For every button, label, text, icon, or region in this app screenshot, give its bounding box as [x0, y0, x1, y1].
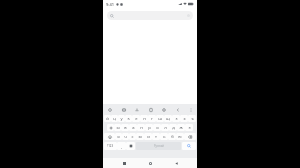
button[interactable]: я — [115, 133, 122, 140]
staticText: ю — [178, 134, 182, 140]
staticText: ?123 — [107, 144, 114, 148]
button[interactable]: с — [129, 133, 136, 140]
button[interactable]: м — [136, 133, 144, 140]
staticText: л — [164, 125, 167, 131]
button[interactable]: г — [148, 115, 156, 122]
button[interactable]: х — [180, 115, 188, 122]
button[interactable]: ?123 — [104, 142, 117, 150]
button[interactable]: ч — [122, 133, 129, 140]
button[interactable]: т — [152, 133, 160, 140]
staticText: ц — [113, 116, 116, 122]
button[interactable]: к — [125, 115, 132, 122]
staticText: , — [121, 144, 123, 149]
button[interactable]: а — [129, 124, 137, 131]
staticText: а — [132, 125, 135, 131]
staticText: в — [124, 125, 127, 131]
staticText: ф — [109, 125, 113, 131]
button[interactable]: ю — [176, 133, 184, 140]
button[interactable]: в — [121, 124, 129, 131]
button[interactable]: р — [145, 124, 153, 131]
button[interactable]: Back — [171, 158, 181, 168]
button[interactable]: и — [144, 133, 152, 140]
staticText: я — [117, 134, 120, 140]
button[interactable]: Change language — [126, 142, 135, 150]
staticText: о — [156, 125, 159, 131]
button[interactable]: Keyboard tool 2 — [133, 106, 140, 113]
staticText: э — [188, 125, 191, 131]
button[interactable]: Keyboard tool 5 — [174, 106, 181, 113]
button[interactable]: д — [169, 124, 177, 131]
staticText: н — [143, 116, 146, 122]
button[interactable]: з — [172, 115, 180, 122]
staticText: т — [155, 134, 157, 140]
button[interactable]: п — [137, 124, 145, 131]
button[interactable]: ь — [160, 133, 168, 140]
button[interactable]: Keyboard tool 0 — [106, 106, 113, 113]
staticText: м — [138, 134, 142, 140]
button[interactable]: у — [118, 115, 125, 122]
button[interactable]: Shift — [104, 133, 115, 140]
staticText: ч — [124, 134, 127, 140]
staticText: ы — [116, 125, 120, 131]
button[interactable]: Keyboard tool 6 — [187, 106, 194, 113]
staticText: р — [148, 125, 151, 131]
staticText: к — [127, 116, 130, 122]
button[interactable]: Keyboard tool 4 — [160, 106, 167, 113]
button[interactable]: ы — [114, 124, 121, 131]
button[interactable]: Keyboard tool 1 — [120, 106, 127, 113]
staticText: п — [140, 125, 143, 131]
staticText: е — [135, 116, 138, 122]
staticText: г — [151, 116, 153, 122]
button[interactable]: Space — [136, 142, 181, 150]
staticText: б — [171, 134, 174, 140]
button[interactable] — [107, 11, 193, 20]
staticText: й — [106, 116, 109, 122]
staticText: ж — [179, 125, 183, 131]
staticText: х — [183, 116, 186, 122]
button[interactable]: о — [153, 124, 161, 131]
button[interactable]: ф — [107, 124, 114, 131]
button[interactable]: Settings — [117, 142, 126, 150]
staticText: ь — [163, 134, 166, 140]
button[interactable]: н — [140, 115, 148, 122]
button[interactable]: б — [168, 133, 176, 140]
button[interactable]: ж — [177, 124, 185, 131]
staticText: з — [175, 116, 178, 122]
button[interactable]: Home — [145, 158, 155, 168]
button[interactable]: е — [132, 115, 140, 122]
button[interactable]: ъ — [188, 115, 196, 122]
button[interactable]: ц — [111, 115, 118, 122]
staticText: ъ — [191, 116, 194, 122]
staticText: с — [131, 134, 134, 140]
button[interactable]: Backspace — [184, 133, 196, 140]
button[interactable]: ш — [156, 115, 164, 122]
button[interactable]: й — [104, 115, 111, 122]
staticText: д — [172, 125, 175, 131]
staticText: у — [120, 116, 123, 122]
button[interactable]: Search — [182, 142, 196, 150]
staticText: и — [147, 134, 150, 140]
staticText: ш — [158, 116, 162, 122]
staticText: щ — [166, 116, 170, 122]
button[interactable]: л — [161, 124, 169, 131]
button[interactable]: Keyboard tool 3 — [147, 106, 154, 113]
staticText: Русский — [154, 144, 164, 148]
button[interactable]: э — [185, 124, 193, 131]
button[interactable]: Recents — [119, 158, 129, 168]
button[interactable]: щ — [164, 115, 172, 122]
staticText: 9:41 — [106, 2, 114, 7]
